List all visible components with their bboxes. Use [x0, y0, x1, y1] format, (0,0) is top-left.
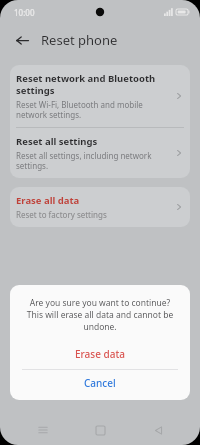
staticText: Reset all settings, including network se…: [16, 150, 168, 171]
button[interactable]: Back: [143, 415, 173, 445]
staticText: 10:00: [14, 7, 35, 18]
button[interactable]: Reset all settings: [10, 128, 190, 178]
staticText: Reset network and Bluetooth settings: [16, 72, 168, 97]
staticText: Erase data: [75, 347, 125, 361]
button[interactable]: Back: [11, 29, 33, 51]
button[interactable]: Erase all data: [10, 187, 190, 227]
staticText: Reset to factory settings: [16, 209, 107, 220]
staticText: Are you sure you want to continue? This …: [22, 297, 178, 333]
staticText: Reset phone: [41, 31, 118, 49]
staticText: Reset Wi-Fi, Bluetooth and mobile networ…: [16, 99, 168, 120]
button[interactable]: Reset network and Bluetooth settings: [10, 65, 190, 127]
button[interactable]: Home: [85, 415, 115, 445]
button[interactable]: Recent apps: [28, 415, 58, 445]
staticText: Cancel: [84, 376, 116, 390]
staticText: Erase all data: [16, 194, 80, 207]
button[interactable]: Erase data: [10, 344, 190, 364]
staticText: Reset all settings: [16, 135, 98, 148]
button[interactable]: Cancel: [10, 370, 190, 396]
